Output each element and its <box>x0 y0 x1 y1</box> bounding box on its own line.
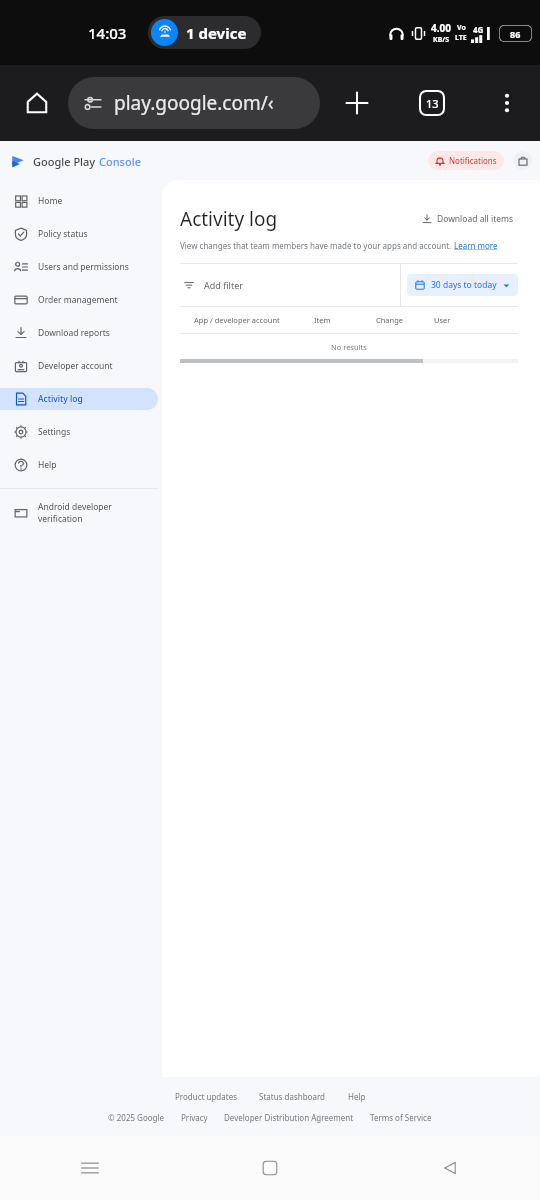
button[interactable]: New tab <box>336 82 378 124</box>
staticText: 4G <box>473 24 484 35</box>
staticText: Settings <box>38 426 71 438</box>
staticText: Help <box>38 459 57 471</box>
staticText: 30 days to today <box>431 279 497 291</box>
button[interactable]: Google Play <box>10 153 141 169</box>
staticText: Developer account <box>38 360 113 372</box>
staticText: 4.00 <box>431 21 451 35</box>
staticText: Policy status <box>38 228 88 240</box>
staticText: App / developer account <box>194 315 314 325</box>
button[interactable]: Tabs: 13 <box>412 83 452 123</box>
staticText: View changes that team members have made… <box>180 240 454 251</box>
button[interactable]: Notifications <box>428 151 504 170</box>
staticText: Download all items <box>437 213 514 225</box>
staticText: Order management <box>38 294 118 306</box>
staticText: 86 <box>510 28 521 40</box>
button[interactable]: Add filter <box>180 264 400 306</box>
button[interactable]: Recent apps <box>0 1135 180 1200</box>
button[interactable]: Learn more <box>454 240 498 251</box>
staticText: Vo <box>457 23 466 33</box>
button[interactable]: Order management <box>0 289 158 311</box>
staticText: Item <box>314 315 376 325</box>
staticText: Users and permissions <box>38 261 129 273</box>
button[interactable]: Download all items <box>418 209 518 229</box>
staticText: Download reports <box>38 327 110 339</box>
staticText: 14:03 <box>88 23 127 43</box>
button[interactable]: Help <box>0 454 158 476</box>
button[interactable]: play.google.com/‹ <box>68 77 320 129</box>
button[interactable]: Help <box>348 1091 366 1102</box>
staticText: Activity log <box>180 206 278 232</box>
staticText: Activity log <box>38 393 83 405</box>
button[interactable]: Policy status <box>0 223 158 245</box>
staticText: Android developer <box>38 501 112 513</box>
button[interactable]: Privacy <box>181 1112 208 1123</box>
button[interactable]: Home <box>0 190 158 212</box>
staticText: Home <box>38 195 63 207</box>
button[interactable]: Back <box>360 1135 540 1200</box>
staticText: play.google.com/‹ <box>114 90 274 116</box>
button[interactable]: 1 device <box>151 16 247 49</box>
button[interactable]: Apps <box>513 151 532 170</box>
staticText: Add filter <box>204 279 243 291</box>
button[interactable]: Developer account <box>0 355 158 377</box>
button[interactable]: 30 days to today <box>407 274 518 296</box>
staticText: © 2025 Google <box>108 1112 165 1123</box>
button[interactable]: Download reports <box>0 322 158 344</box>
button[interactable]: Users and permissions <box>0 256 158 278</box>
button[interactable]: Android developer <box>0 501 158 525</box>
staticText: No results <box>331 342 367 352</box>
button[interactable]: Home <box>180 1135 360 1200</box>
staticText: Change <box>376 315 434 325</box>
button[interactable]: Activity log <box>0 388 158 410</box>
staticText: Console <box>99 154 141 169</box>
staticText: verification <box>38 513 83 525</box>
staticText: Google Play <box>33 154 99 169</box>
button[interactable]: More options <box>488 84 526 122</box>
staticText: 1 device <box>186 23 247 43</box>
button[interactable]: Product updates <box>175 1091 237 1102</box>
staticText: KB/S <box>433 35 450 45</box>
button[interactable]: Status dashboard <box>259 1091 326 1102</box>
staticText: LTE <box>455 33 467 43</box>
button[interactable]: Home <box>18 84 56 122</box>
button[interactable]: Developer Distribution Agreement <box>224 1112 354 1123</box>
staticText: User <box>434 315 451 325</box>
button[interactable]: Terms of Service <box>370 1112 432 1123</box>
button[interactable]: Settings <box>0 421 158 443</box>
staticText: Notifications <box>449 155 497 166</box>
staticText: 13 <box>426 96 439 111</box>
